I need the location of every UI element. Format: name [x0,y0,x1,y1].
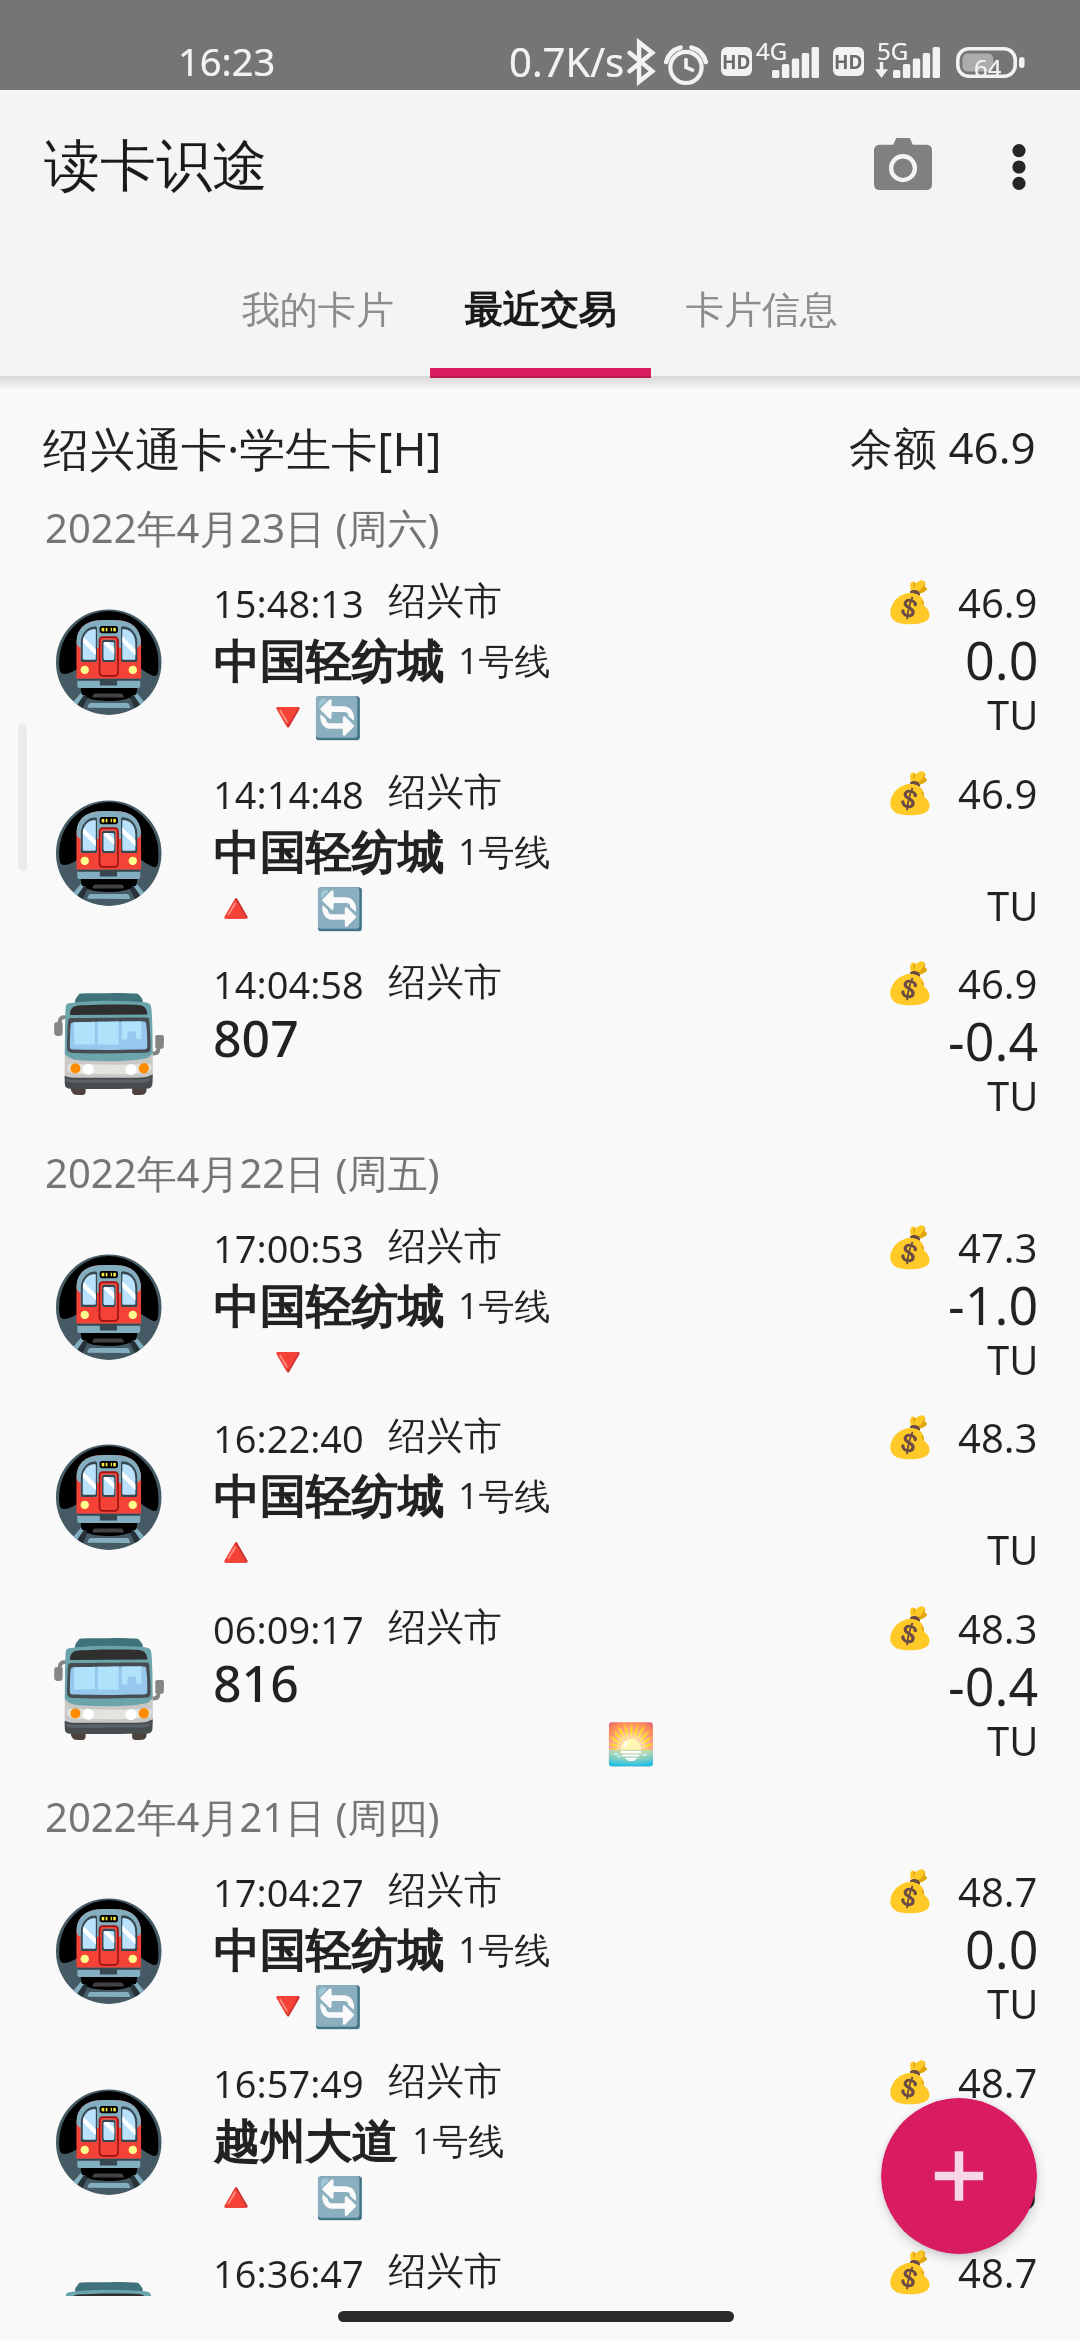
staticText: 中国轻纺城 [213,1469,443,1527]
staticText: 绍兴通卡·学生卡[H] [43,417,442,480]
staticText: 💰 [885,1224,935,1271]
staticText: 1号线 [412,2116,505,2165]
staticText: 🔄 [315,2175,365,2222]
staticText: 中国轻纺城 [213,1923,443,1981]
staticText: 0.0 [965,624,1039,695]
staticText: TU [987,1976,1039,2030]
staticText: 16:23 [178,35,276,87]
button[interactable]: 🚇 [0,1394,1080,1585]
staticText: 🚍 [49,1631,169,1744]
staticText: 🚇 [49,1441,169,1554]
staticText: 2022年4月21日 (周四) [45,1789,440,1844]
button[interactable]: 我的卡片 [207,238,429,376]
button[interactable]: Camera [848,109,958,219]
staticText: 绍兴市 [388,2247,502,2295]
button[interactable]: 🚍 [0,940,1080,1131]
staticText: 绍兴市 [388,1866,502,1914]
staticText: 2022年4月22日 (周五) [45,1145,440,1200]
staticText: 最近交易 [464,286,616,334]
staticText: 💰 [885,1414,935,1461]
staticText: 0.7K/s [509,34,625,88]
staticText: TU [987,1522,1039,1576]
staticText: TU [987,1332,1039,1386]
staticText: 1号线 [458,1471,551,1520]
staticText: -0.4 [948,1005,1039,1076]
staticText: 我的卡片 [242,286,394,334]
staticText: 46.9 [958,956,1038,1010]
staticText: 1号线 [458,1281,551,1330]
staticText: 绍兴市 [388,958,502,1006]
staticText: 绍兴市 [388,577,502,625]
staticText: -1.0 [948,1269,1039,1340]
staticText: 越州大道 [213,2114,397,2172]
staticText: TU [987,2167,1039,2221]
staticText: 绍兴市 [388,2057,502,2105]
staticText: TU [987,1713,1039,1767]
staticText: 15:48:13 [213,577,364,629]
staticText: 💰 [885,2059,935,2106]
staticText: 64 [974,51,1002,84]
staticText: 16:36:47 [213,2247,364,2296]
staticText: 卡片信息 [686,286,838,334]
staticText: 中国轻纺城 [213,634,443,692]
button[interactable]: 🚇 [0,2039,1080,2230]
button[interactable]: Add card [881,2098,1037,2254]
staticText: 46.9 [958,766,1038,820]
staticText: 中国轻纺城 [213,1279,443,1337]
button[interactable]: 🚇 [0,559,1080,750]
staticText: 绍兴市 [388,1412,502,1460]
staticText: 🔻 [263,694,313,741]
staticText: 807 [213,1004,299,1072]
staticText: 🔺 [211,1529,261,1576]
staticText: 14:04:58 [213,958,364,1010]
staticText: 🔄 [315,886,365,933]
staticText: 48.7 [958,1864,1038,1918]
staticText: 🚍 [49,2275,169,2296]
staticText: 17:00:53 [213,1222,364,1274]
staticText: TU [987,878,1039,932]
staticText: 💰 [885,960,935,1007]
button[interactable]: 最近交易 [429,238,651,376]
staticText: 🚇 [49,1895,169,2008]
staticText: 06:09:17 [213,1603,364,1655]
staticText: 48.7 [958,2055,1038,2109]
staticText: 余额 46.9 [849,417,1036,477]
staticText: 1号线 [458,827,551,876]
button[interactable]: 🚇 [0,1848,1080,2039]
staticText: 16:22:40 [213,1412,364,1464]
staticText: 0.0 [965,1913,1039,1984]
staticText: 🚇 [49,2086,169,2199]
button[interactable]: 🚇 [0,1204,1080,1395]
staticText: 2022年4月23日 (周六) [45,500,440,555]
staticText: 🔄 [313,1984,363,2031]
button[interactable]: More options [964,112,1074,222]
button[interactable]: 🚇 [0,750,1080,941]
staticText: 绍兴市 [388,1603,502,1651]
staticText: 🔄 [313,695,363,742]
staticText: 🔻 [263,1339,313,1386]
staticText: 47.3 [958,1220,1038,1274]
staticText: 🌅 [606,1721,656,1768]
staticText: 16:57:49 [213,2057,364,2109]
staticText: 绍兴市 [388,768,502,816]
staticText: 💰 [885,1868,935,1915]
staticText: 中国轻纺城 [213,825,443,883]
staticText: 💰 [885,579,935,626]
staticText: 🚇 [49,606,169,719]
staticText: 5G [877,34,909,67]
staticText: 46.9 [958,575,1038,629]
staticText: 48.7 [958,2245,1038,2296]
staticText: 🔻 [263,1983,313,2030]
staticText: 17:04:27 [213,1866,364,1918]
button[interactable]: 🚍 [0,2229,1080,2296]
staticText: 4G [756,34,788,67]
staticText: 48.3 [958,1601,1038,1655]
button[interactable]: 🚍 [0,1585,1080,1776]
button[interactable]: 卡片信息 [651,238,873,376]
staticText: 1号线 [458,1925,551,1974]
staticText: 🔺 [211,2174,261,2221]
staticText: 816 [213,1649,299,1717]
staticText: 💰 [885,770,935,817]
staticText: 读卡识途 [44,131,268,202]
staticText: 🚇 [49,797,169,910]
